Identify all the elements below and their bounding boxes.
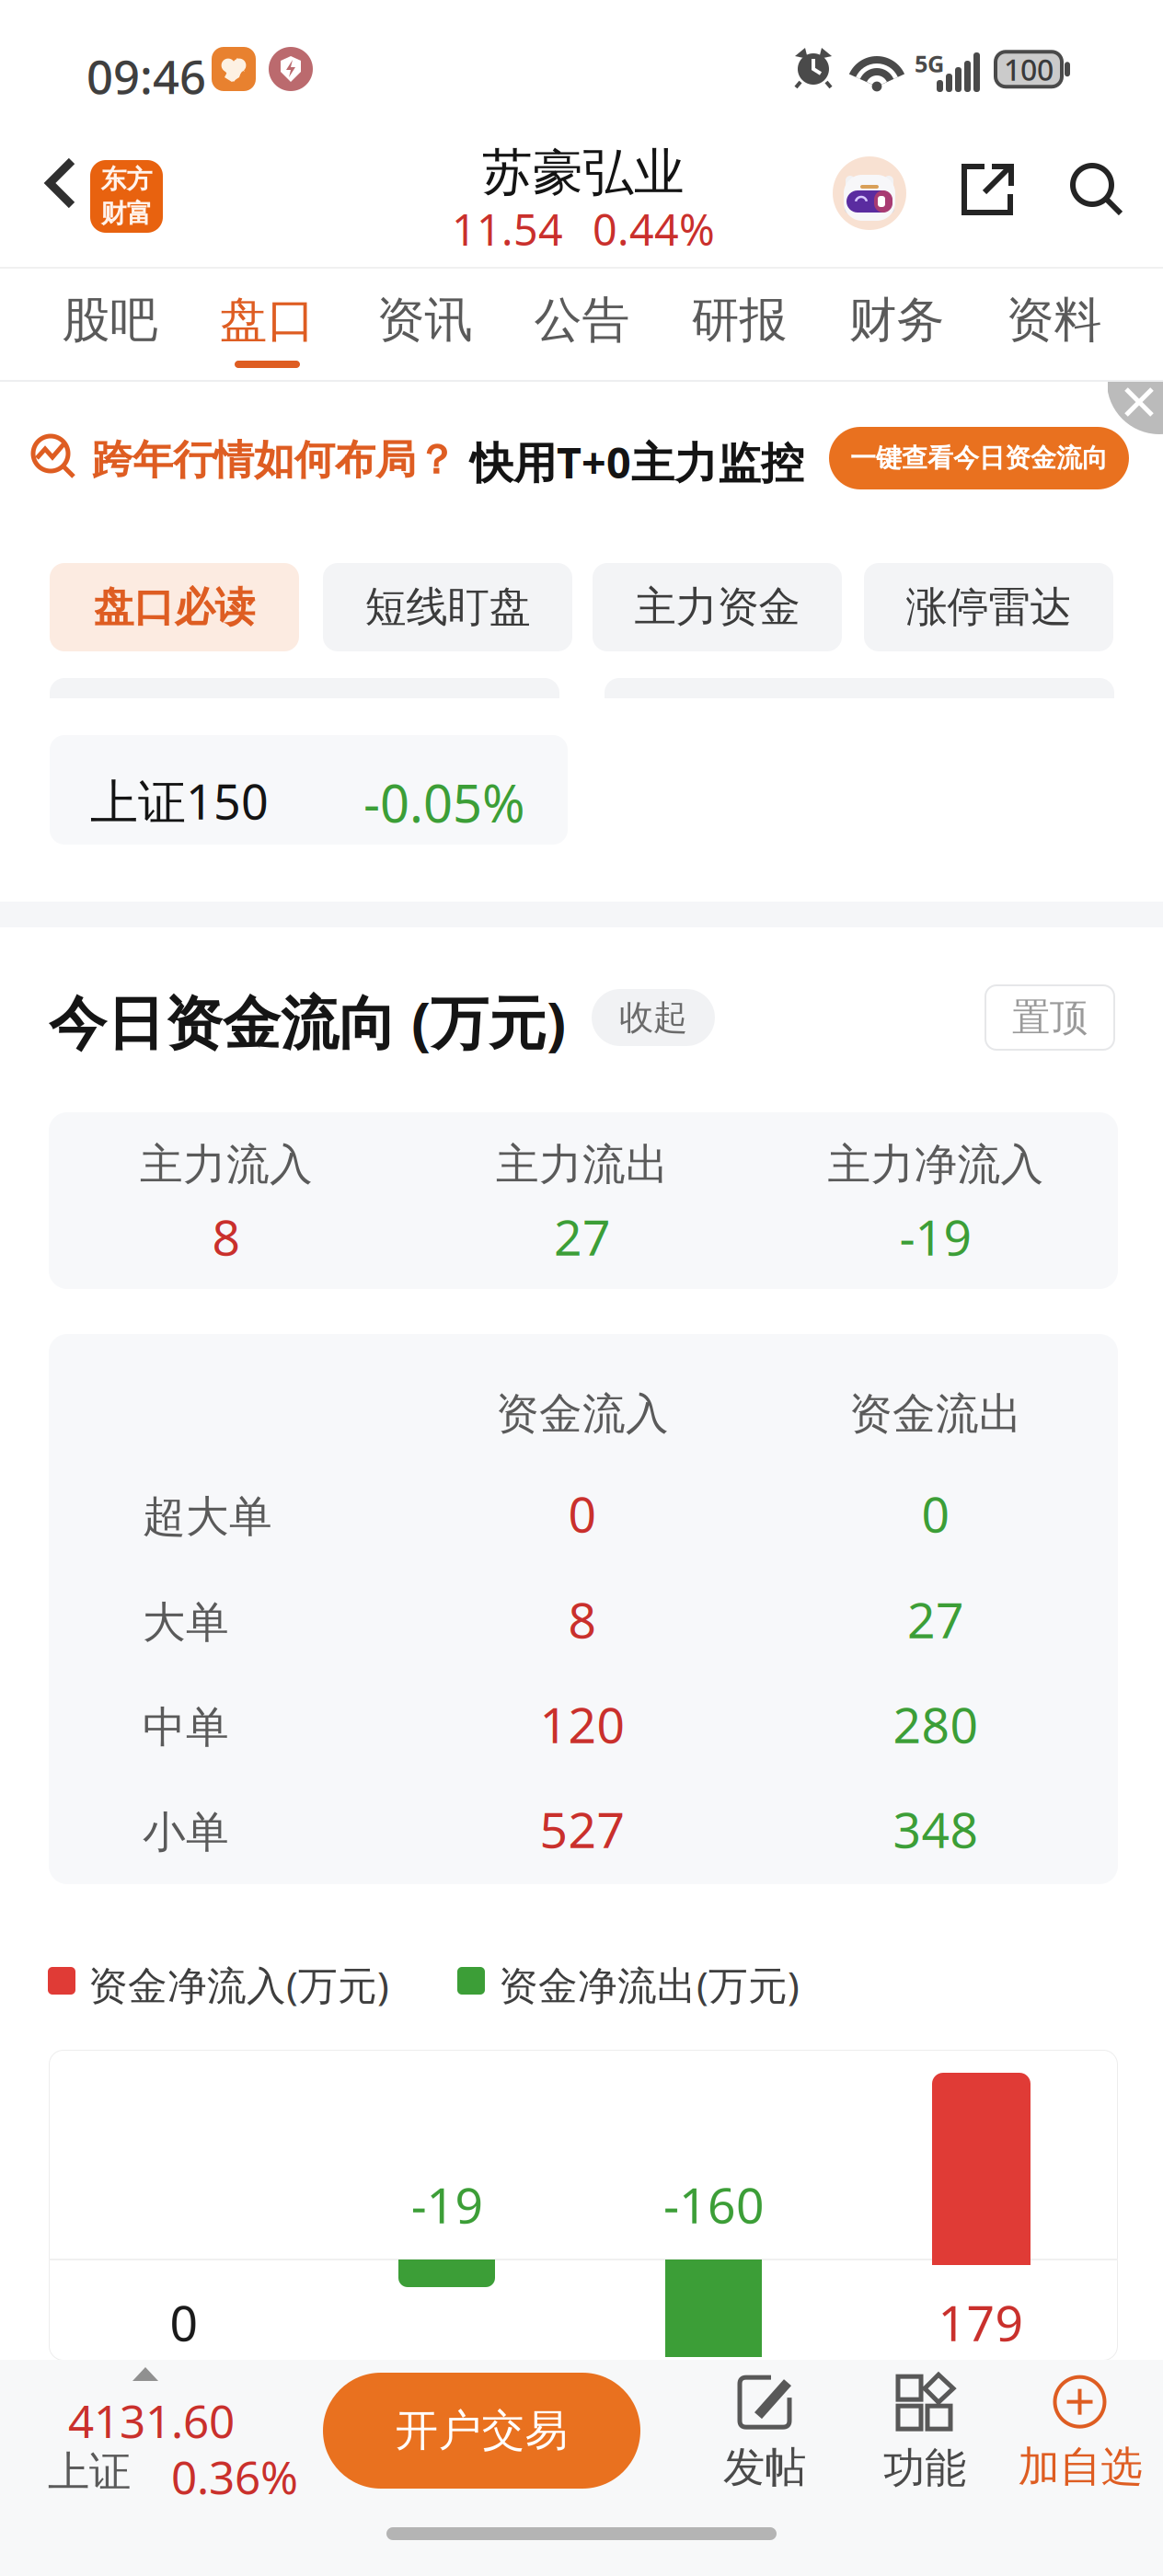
staticText: 大单 <box>143 1596 229 1649</box>
staticText: 0.36% <box>171 2446 298 2507</box>
button[interactable]: 财务 <box>818 287 975 379</box>
button[interactable]: 关闭 <box>1108 382 1163 435</box>
button[interactable]: 跨年行情如何布局 快用T+0主力监控 <box>0 397 1163 517</box>
staticText: 东方 <box>101 163 152 195</box>
staticText: 上证 <box>48 2446 131 2498</box>
button[interactable]: 研报 <box>661 287 818 379</box>
staticText: 0.44% <box>593 201 715 258</box>
staticText: 资金流入 <box>496 1388 669 1440</box>
staticText: 资金流出 <box>849 1388 1022 1440</box>
button[interactable]: 上证150 <box>50 735 568 845</box>
staticText: 120 <box>540 1692 625 1757</box>
staticText: 100 <box>1004 50 1054 89</box>
button[interactable]: 资料 <box>975 287 1133 379</box>
staticText: 跨年行情如何布局？ <box>92 435 456 485</box>
staticText: 盘口必读 <box>93 582 255 632</box>
staticText: 0 <box>921 1481 950 1546</box>
staticText: 11.54 <box>452 201 563 258</box>
button[interactable]: 发帖 <box>682 2369 847 2498</box>
button[interactable]: 置顶 <box>985 985 1114 1050</box>
staticText: 中单 <box>143 1701 229 1754</box>
staticText: 资金净流出(万元) <box>499 1959 800 2011</box>
staticText: 527 <box>540 1796 625 1862</box>
button[interactable]: 功能 <box>842 2369 1008 2498</box>
button[interactable]: 加自选 <box>997 2369 1163 2498</box>
button[interactable]: 公告 <box>503 287 661 379</box>
staticText: 5G <box>915 48 944 79</box>
staticText: 27 <box>554 1204 611 1269</box>
staticText: 发帖 <box>723 2442 806 2493</box>
button[interactable]: 返回 <box>20 131 101 236</box>
staticText: -19 <box>411 2172 484 2237</box>
staticText: 研报 <box>691 291 787 350</box>
button[interactable]: 收起 <box>592 989 715 1046</box>
button[interactable]: 盘口 <box>189 287 346 379</box>
staticText: 179 <box>938 2290 1024 2355</box>
staticText: 资料 <box>1006 291 1102 350</box>
staticText: 财务 <box>849 291 944 350</box>
staticText: 8 <box>568 1587 597 1652</box>
staticText: 功能 <box>883 2443 966 2494</box>
staticText: 主力资金 <box>634 582 800 633</box>
button[interactable]: 4131.60 <box>0 2363 304 2501</box>
staticText: 0 <box>568 1481 597 1546</box>
staticText: -160 <box>663 2172 765 2237</box>
staticText: 收起 <box>619 996 687 1039</box>
staticText: 09:46 <box>86 45 206 107</box>
staticText: 4131.60 <box>68 2390 235 2450</box>
button[interactable]: 短线盯盘 <box>323 563 572 651</box>
staticText: 0 <box>170 2290 198 2355</box>
staticText: 280 <box>893 1692 979 1757</box>
button[interactable]: 开户交易 <box>323 2373 640 2489</box>
staticText: 快用T+0主力监控 <box>470 433 804 490</box>
staticText: 27 <box>907 1587 964 1652</box>
staticText: 超大单 <box>143 1490 272 1543</box>
staticText: 短线盯盘 <box>365 582 530 633</box>
button[interactable]: 资讯 <box>346 287 503 379</box>
staticText: 资讯 <box>377 291 472 350</box>
staticText: 小单 <box>143 1806 229 1859</box>
staticText: 股吧 <box>62 291 158 350</box>
staticText: 涨停雷达 <box>906 582 1071 633</box>
button[interactable]: 一键查看今日资金流向 <box>829 427 1129 489</box>
staticText: 今日资金流向 (万元) <box>49 983 566 1060</box>
staticText: -19 <box>899 1204 972 1269</box>
staticText: 苏豪弘业 <box>482 142 685 203</box>
button[interactable]: 涨停雷达 <box>864 563 1113 651</box>
button[interactable]: 搜索 <box>1052 144 1142 235</box>
button[interactable]: 东方财富 <box>90 160 163 233</box>
staticText: 加自选 <box>1018 2441 1142 2493</box>
button[interactable]: 股吧 <box>31 287 189 379</box>
staticText: 主力净流入 <box>828 1138 1044 1191</box>
staticText: 公告 <box>534 291 630 350</box>
staticText: 主力流出 <box>496 1138 669 1191</box>
staticText: 置顶 <box>1012 994 1088 1041</box>
staticText: 盘口 <box>219 291 315 350</box>
staticText: 财富 <box>101 198 152 229</box>
button[interactable]: 分享 <box>942 144 1032 235</box>
button[interactable]: 盘口必读 <box>50 563 299 651</box>
staticText: -0.05% <box>363 768 525 837</box>
staticText: 主力流入 <box>140 1138 313 1191</box>
staticText: 资金净流入(万元) <box>88 1959 389 2011</box>
staticText: 8 <box>212 1204 241 1269</box>
staticText: 一键查看今日资金流向 <box>850 442 1108 474</box>
staticText: 上证150 <box>90 769 269 833</box>
button[interactable]: 主力资金 <box>593 563 842 651</box>
button[interactable]: AI 助手 <box>833 156 906 230</box>
staticText: 348 <box>893 1796 979 1862</box>
staticText: 开户交易 <box>395 2404 568 2457</box>
